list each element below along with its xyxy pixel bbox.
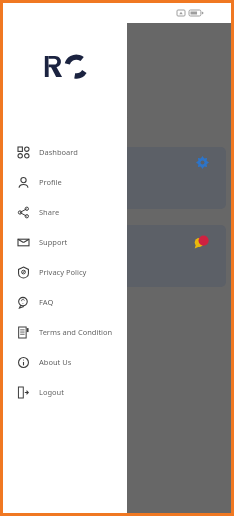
- button[interactable]: FAQs: [10, 225, 226, 287]
- staticText: About Us: [39, 357, 72, 367]
- button[interactable]: FAQ: [3, 287, 127, 317]
- staticText: Terms and Condition: [39, 327, 113, 337]
- staticText: FAQs: [20, 262, 40, 273]
- button[interactable]: Share: [3, 197, 127, 227]
- button[interactable]: Logout: [3, 377, 127, 407]
- button[interactable]: Dashboard: [3, 137, 127, 167]
- staticText: How to Use: [20, 180, 47, 201]
- button[interactable]: Support: [3, 227, 127, 257]
- button[interactable]: Privacy Policy: [3, 257, 127, 287]
- staticText: Support: [39, 237, 68, 247]
- staticText: Share: [39, 207, 60, 217]
- staticText: Dashboard: [39, 147, 78, 157]
- button[interactable]: About Us: [3, 347, 127, 377]
- staticText: Logout: [39, 387, 64, 397]
- staticText: Profile: [39, 177, 62, 187]
- other: FAQs: [194, 234, 209, 249]
- other: Settings: [196, 156, 209, 169]
- staticText: FAQ: [39, 297, 54, 307]
- button[interactable]: Settings: [10, 147, 226, 209]
- staticText: Privacy Policy: [39, 267, 87, 277]
- button[interactable]: Terms and Condition: [3, 317, 127, 347]
- button[interactable]: Profile: [3, 167, 127, 197]
